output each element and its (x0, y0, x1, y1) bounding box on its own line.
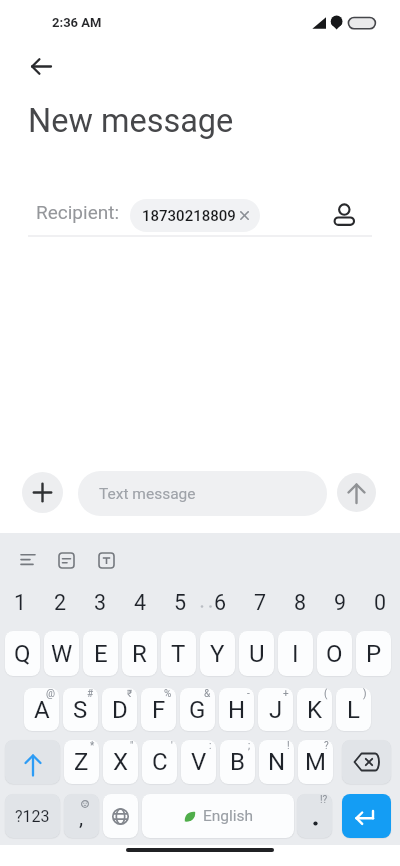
button[interactable]: S (63, 688, 98, 731)
button[interactable]: D (102, 688, 137, 731)
button[interactable]: I (278, 631, 313, 676)
staticText: Y (210, 640, 225, 668)
staticText: F (152, 696, 166, 724)
button[interactable]: O (317, 631, 352, 676)
staticText: V (191, 748, 207, 776)
staticText: 0 (374, 590, 387, 615)
button[interactable] (22, 472, 63, 513)
staticText: & (204, 688, 211, 700)
button[interactable] (20, 52, 56, 88)
staticText: 18730218809 (142, 207, 236, 225)
staticText: 5 (174, 590, 187, 615)
button[interactable] (103, 794, 138, 838)
staticText: L (347, 696, 360, 724)
button[interactable]: 4 (120, 588, 160, 616)
button[interactable] (337, 473, 376, 512)
staticText: * (90, 740, 95, 752)
button[interactable]: W (44, 631, 79, 676)
button[interactable]: G (180, 688, 215, 731)
button[interactable]: English (142, 794, 294, 838)
staticText: ? (324, 740, 329, 752)
button[interactable]: F (141, 688, 176, 731)
button[interactable]: , (64, 794, 99, 838)
staticText: B (230, 748, 245, 776)
staticText: S (73, 696, 88, 724)
staticText: H (228, 696, 246, 724)
button[interactable]: L (336, 688, 371, 731)
staticText: T (171, 640, 186, 668)
staticText: ( (324, 688, 328, 700)
staticText: ; (248, 740, 251, 752)
button[interactable]: P (356, 631, 391, 676)
staticText: M (305, 748, 326, 776)
staticText: : (209, 740, 212, 752)
staticText: ₹ (127, 688, 133, 700)
button[interactable]: T (161, 631, 196, 676)
button[interactable]: 8 (280, 588, 320, 616)
button[interactable]: Z (64, 740, 99, 784)
button[interactable]: Y (200, 631, 235, 676)
button[interactable]: 7 (240, 588, 280, 616)
staticText: , (79, 806, 84, 831)
button[interactable]: Text message (78, 471, 327, 516)
staticText: @ (46, 688, 55, 700)
button[interactable]: ?123 (5, 794, 60, 838)
button[interactable]: C (142, 740, 177, 784)
button[interactable] (5, 740, 60, 784)
staticText: !? (320, 794, 328, 806)
staticText: 3 (94, 590, 107, 615)
staticText: E (94, 640, 108, 668)
button[interactable]: 1 (0, 588, 40, 616)
button[interactable]: J (258, 688, 293, 731)
staticText: I (292, 640, 299, 668)
button[interactable]: A (24, 688, 59, 731)
staticText: J (269, 696, 283, 724)
staticText: # (87, 688, 94, 700)
staticText: Z (74, 748, 89, 776)
staticText: C (152, 748, 168, 776)
staticText: Recipient: (36, 201, 120, 223)
staticText: N (268, 748, 286, 776)
button[interactable]: 5 (160, 588, 200, 616)
button[interactable]: 9 (320, 588, 360, 616)
staticText: % (164, 688, 172, 700)
button[interactable]: K (297, 688, 332, 731)
button[interactable] (342, 740, 391, 784)
button[interactable]: U (239, 631, 274, 676)
button[interactable]: !? (297, 794, 332, 838)
staticText: New message (28, 102, 234, 140)
staticText: G (189, 696, 206, 724)
staticText: O (326, 640, 343, 668)
staticText: + (283, 688, 289, 700)
button[interactable]: X (103, 740, 138, 784)
staticText: Text message (99, 485, 196, 503)
staticText: 9 (334, 590, 347, 615)
staticText: ?123 (15, 807, 50, 826)
button[interactable]: B (220, 740, 255, 784)
staticText: ) (363, 688, 367, 700)
staticText: Q (14, 640, 31, 668)
button[interactable]: 3 (80, 588, 120, 616)
button[interactable]: 6 (200, 588, 240, 616)
button[interactable]: Q (5, 631, 40, 676)
staticText: ' (171, 740, 173, 752)
staticText: 8 (294, 590, 307, 615)
button[interactable]: M (298, 740, 333, 784)
button[interactable]: V (181, 740, 216, 784)
staticText: " (130, 740, 134, 752)
staticText: ! (287, 740, 290, 752)
button[interactable]: R (122, 631, 157, 676)
staticText: - (247, 688, 250, 700)
staticText: D (112, 696, 128, 724)
button[interactable]: 2 (40, 588, 80, 616)
button[interactable]: N (259, 740, 294, 784)
staticText: English (203, 807, 254, 825)
button[interactable]: 0 (360, 588, 400, 616)
button[interactable] (342, 794, 391, 838)
button[interactable]: H (219, 688, 254, 731)
button[interactable]: 18730218809 (130, 199, 260, 232)
button[interactable]: E (83, 631, 118, 676)
staticText: 4 (134, 590, 147, 615)
button[interactable] (330, 197, 360, 227)
staticText: 7 (254, 590, 267, 615)
